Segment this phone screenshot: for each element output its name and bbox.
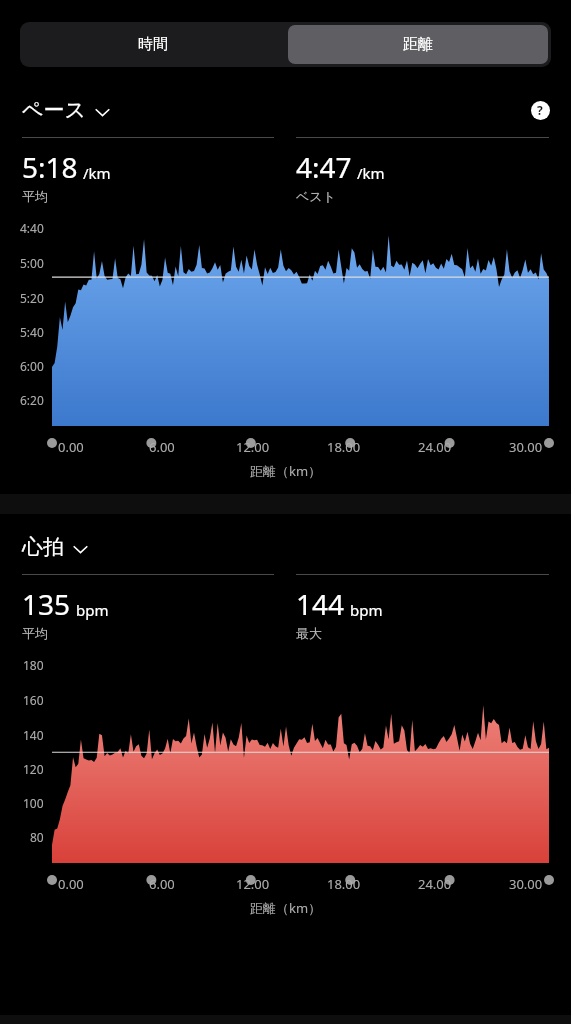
staticText: 心拍	[22, 534, 64, 560]
staticText: ペース	[22, 97, 86, 123]
staticText: bpm	[76, 600, 109, 620]
staticText: 18.00	[327, 438, 361, 456]
staticText: /km	[83, 163, 111, 183]
staticText: 120	[23, 761, 44, 777]
staticText: 6.00	[149, 438, 175, 456]
staticText: /km	[357, 163, 385, 183]
staticText: 平均	[22, 625, 48, 641]
staticText: 160	[23, 692, 44, 708]
staticText: 最大	[296, 625, 322, 641]
staticText: 30.00	[509, 438, 543, 456]
staticText: 18.00	[327, 875, 361, 893]
staticText: bpm	[350, 600, 383, 620]
staticText: 5:40	[20, 324, 44, 340]
staticText: 24.00	[418, 875, 452, 893]
staticText: 144	[296, 585, 345, 623]
staticText: 6.00	[149, 875, 175, 893]
staticText: 5:20	[20, 290, 44, 306]
staticText: 4:40	[20, 220, 44, 236]
staticText: 12.00	[236, 438, 270, 456]
button[interactable]: ペース	[22, 97, 110, 123]
staticText: 24.00	[418, 438, 452, 456]
staticText: 時間	[138, 35, 168, 54]
staticText: 6:20	[20, 392, 44, 408]
staticText: 0.00	[58, 875, 84, 893]
staticText: 距離（km）	[0, 899, 571, 917]
staticText: ?	[537, 102, 543, 118]
staticText: 距離（km）	[0, 462, 571, 480]
staticText: 平均	[22, 188, 48, 204]
staticText: 12.00	[236, 875, 270, 893]
staticText: 100	[23, 795, 44, 811]
staticText: 6:00	[20, 358, 44, 374]
staticText: 140	[23, 727, 44, 743]
button[interactable]: 時間	[20, 22, 285, 67]
staticText: 80	[30, 829, 44, 845]
staticText: 135	[22, 585, 71, 623]
button[interactable]: ヘルプ	[527, 97, 553, 123]
staticText: 4:47	[296, 148, 352, 186]
staticText: 5:18	[22, 148, 78, 186]
button[interactable]: 心拍	[22, 534, 88, 560]
staticText: 距離	[403, 35, 433, 54]
staticText: 180	[23, 657, 44, 673]
staticText: 0.00	[58, 438, 84, 456]
staticText: ベスト	[296, 188, 336, 204]
staticText: 5:00	[20, 255, 44, 271]
button[interactable]: 距離	[288, 25, 548, 64]
staticText: 30.00	[509, 875, 543, 893]
